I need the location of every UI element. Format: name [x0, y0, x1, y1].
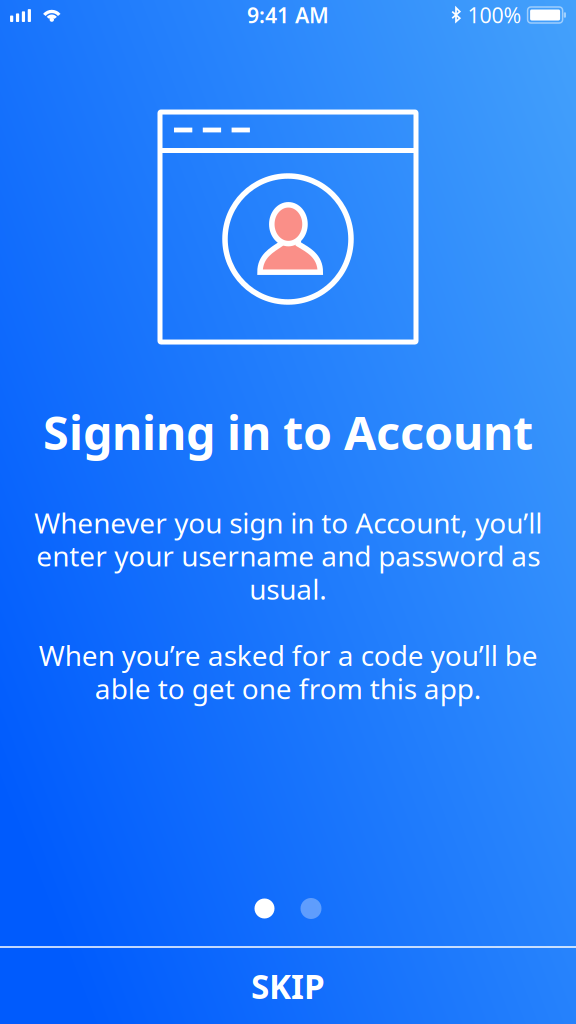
- staticText: 9:41 AM: [247, 1, 329, 29]
- staticText: Signing in to Account: [43, 401, 533, 463]
- staticText: When you’re asked for a code you’ll be a…: [38, 636, 537, 707]
- staticText: Whenever you sign in to Account, you’ll …: [34, 504, 542, 607]
- button[interactable]: SKIP: [0, 948, 576, 1024]
- staticText: SKIP: [251, 964, 325, 1008]
- staticText: 100%: [468, 1, 522, 29]
